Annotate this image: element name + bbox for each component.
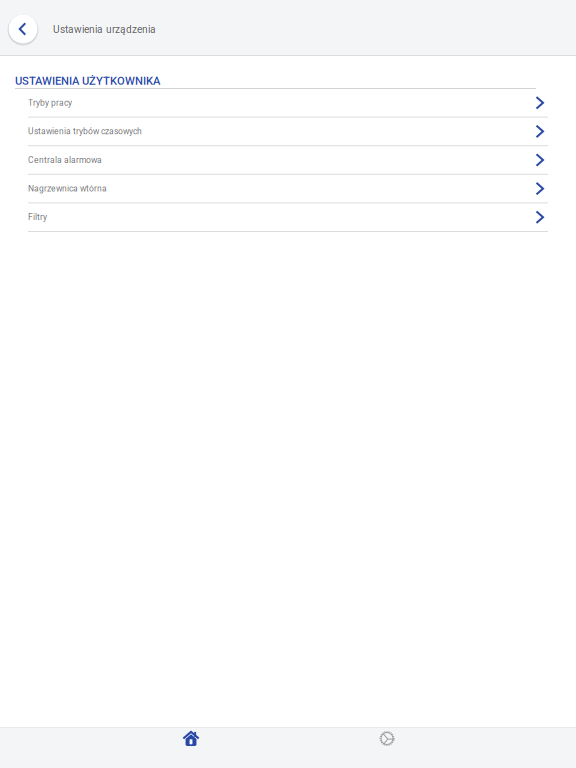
button[interactable]: Home [93,728,289,768]
button[interactable]: Filtry [0,203,576,232]
button[interactable]: Nagrzewnica wtórna [0,175,576,203]
staticText: Centrala alarmowa [28,155,102,165]
button[interactable]: Tryby pracy [0,89,576,118]
button[interactable]: Settings [289,728,485,768]
staticText: Ustawienia trybów czasowych [28,126,142,136]
staticText: USTAWIENIA UŻYTKOWNIKA [15,74,160,87]
button[interactable]: Centrala alarmowa [0,146,576,175]
staticText: Tryby pracy [28,98,72,108]
button[interactable]: Back [1,5,45,49]
staticText: Ustawienia urządzenia [53,24,156,35]
staticText: Nagrzewnica wtórna [28,184,107,194]
staticText: Filtry [28,212,47,222]
button[interactable]: Ustawienia trybów czasowych [0,118,576,146]
